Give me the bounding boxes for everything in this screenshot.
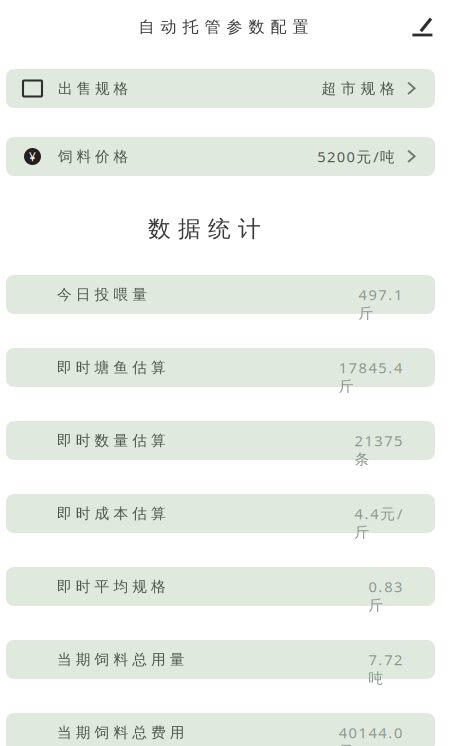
staticText: 即时塘鱼估算 (57, 358, 166, 376)
staticText: 0.83斤 (368, 577, 419, 596)
staticText: 7.72吨 (368, 650, 419, 669)
staticText: 497.1斤 (358, 285, 419, 304)
staticText: 当期饲料总用量 (57, 650, 185, 668)
staticText: 出售规格 (58, 79, 128, 97)
staticText: 即时数量估算 (57, 431, 166, 449)
staticText: ¥ (29, 148, 36, 164)
staticText: 超市规格 (321, 79, 395, 97)
staticText: 饲料价格 (58, 147, 128, 165)
button[interactable]: 编辑 (397, 22, 435, 47)
staticText: 5200元/吨 (317, 147, 395, 166)
staticText: 17845.4斤 (339, 358, 419, 377)
button[interactable]: 出售规格 (6, 69, 435, 108)
staticText: 自动托管参数配置 (138, 17, 308, 37)
staticText: 40144.0元 (339, 723, 419, 742)
staticText: 即时平均规格 (57, 577, 166, 595)
staticText: 即时成本估算 (57, 504, 166, 522)
staticText: 当期饲料总费用 (57, 723, 185, 741)
staticText: 4.4元/斤 (354, 504, 419, 523)
staticText: 数据统计 (148, 215, 261, 243)
button[interactable]: ¥ (6, 137, 435, 176)
staticText: 今日投喂量 (57, 285, 147, 303)
staticText: 21375条 (354, 431, 419, 450)
